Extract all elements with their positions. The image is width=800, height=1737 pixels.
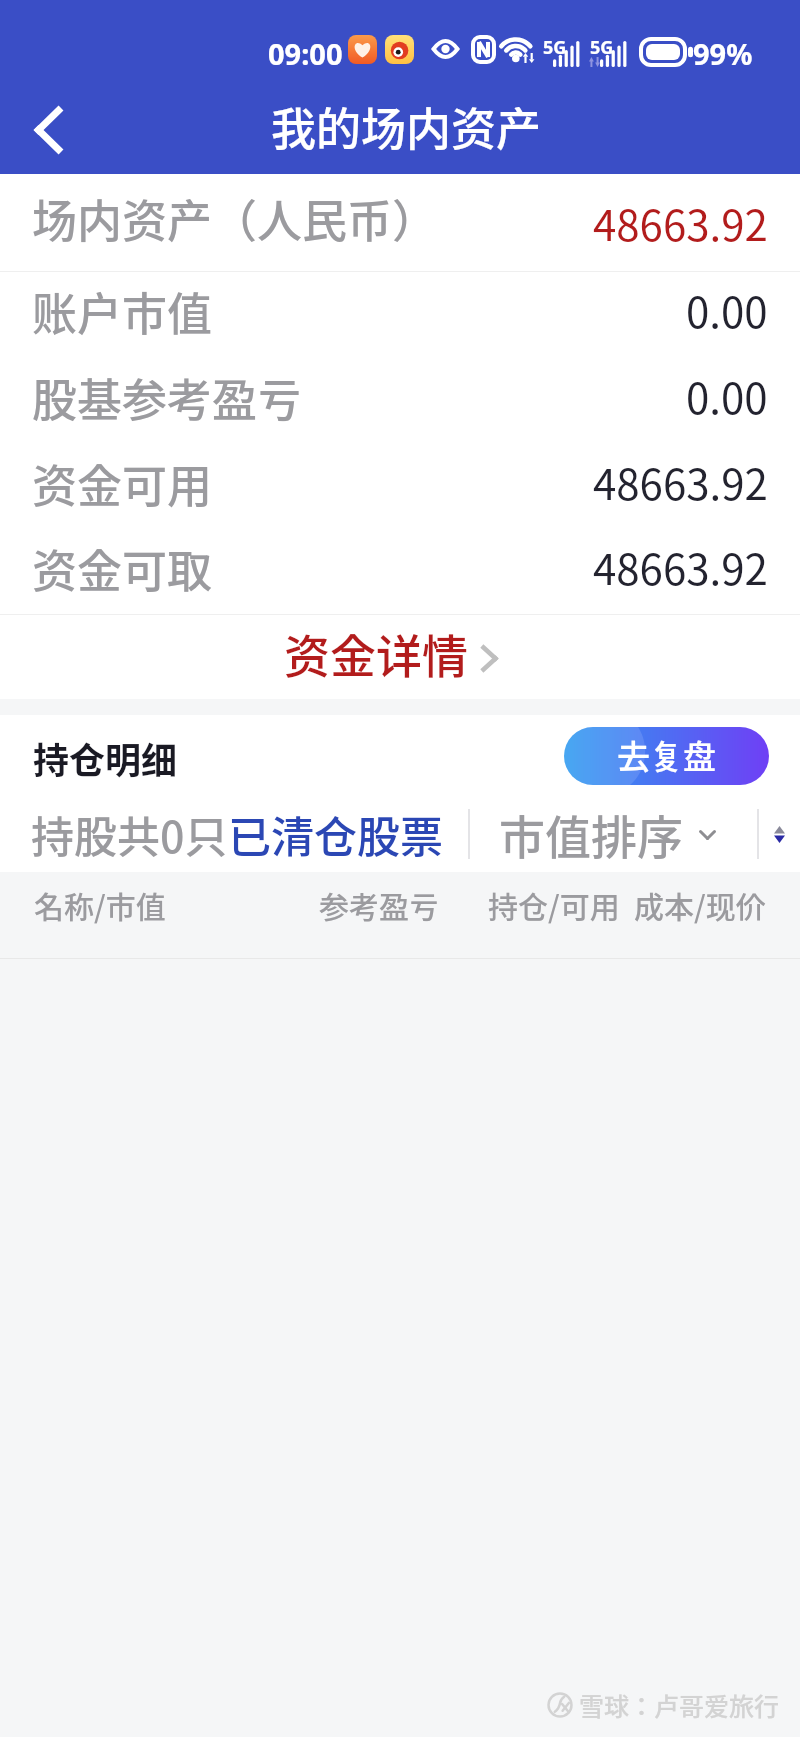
staticText: 0.00 bbox=[686, 365, 768, 426]
staticText: 已清仓股票 bbox=[228, 803, 443, 865]
button[interactable]: 资金详情 bbox=[0, 615, 800, 699]
button[interactable]: 场内资产（人民币） bbox=[0, 174, 800, 271]
staticText: 资金可取 bbox=[32, 536, 213, 601]
staticText: 股基参考盈亏 bbox=[32, 365, 303, 430]
staticText: 48663.92 bbox=[593, 536, 768, 597]
button[interactable]: 股基参考盈亏 bbox=[0, 358, 800, 444]
staticText: 账户市值 bbox=[32, 279, 213, 344]
staticText: 48663.92 bbox=[593, 192, 768, 253]
button[interactable]: 资金可取 bbox=[0, 530, 800, 614]
staticText: 名称/市值 bbox=[34, 883, 166, 926]
button[interactable]: 去复盘 bbox=[564, 727, 769, 785]
button[interactable]: 账户市值 bbox=[0, 272, 800, 358]
staticText: 持仓/可用 bbox=[488, 883, 620, 926]
staticText: 资金可用 bbox=[32, 451, 213, 516]
staticText: 5G bbox=[543, 35, 567, 60]
staticText: 市值排序 bbox=[499, 801, 683, 868]
staticText: 48663.92 bbox=[593, 451, 768, 512]
staticText: 持股共0只 bbox=[31, 803, 228, 865]
button[interactable]: 市值排序 bbox=[499, 801, 716, 868]
button[interactable]: Back bbox=[8, 90, 88, 170]
staticText: 09:00 bbox=[268, 34, 343, 73]
staticText: 持仓明细 bbox=[33, 732, 178, 784]
button[interactable]: Sort order bbox=[761, 803, 797, 865]
staticText: 雪球：卢哥爱旅行 bbox=[579, 1687, 780, 1723]
staticText: 99% bbox=[693, 34, 753, 73]
staticText: 场内资产（人民币） bbox=[32, 186, 438, 251]
staticText: 5G bbox=[590, 35, 614, 60]
button[interactable]: 持股共0只 bbox=[31, 803, 443, 865]
staticText: 成本/现价 bbox=[634, 883, 766, 926]
staticText: 参考盈亏 bbox=[319, 883, 439, 926]
button[interactable]: 资金可用 bbox=[0, 444, 800, 530]
staticText: 去复盘 bbox=[617, 731, 716, 779]
staticText: 我的场内资产 bbox=[271, 94, 542, 159]
staticText: 0.00 bbox=[686, 279, 768, 340]
staticText: 资金详情 bbox=[284, 620, 468, 687]
